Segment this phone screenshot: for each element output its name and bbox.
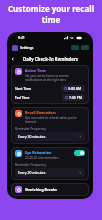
staticText: Settings	[20, 45, 34, 50]
staticText: Reminder Frequency	[15, 127, 47, 131]
button[interactable]: Every 30 minutes	[15, 132, 85, 141]
button[interactable]: App icon	[12, 45, 18, 51]
button[interactable]: Every 20 minutes	[15, 168, 85, 177]
staticText: Set your active hours to receive notific…	[25, 74, 70, 82]
staticText: Eye Relaxation	[25, 150, 52, 155]
staticText: 7:00 PM	[69, 95, 82, 100]
button[interactable]: Toggle Eye Relaxation	[74, 150, 85, 156]
staticText: End Time	[15, 96, 30, 100]
button[interactable]: Start Time	[15, 85, 85, 92]
staticText: Every 30 minutes	[18, 134, 46, 139]
staticText: Active Time	[25, 68, 46, 73]
button[interactable]: Profile	[81, 45, 89, 50]
staticText: Stretching Breaks	[25, 187, 57, 192]
staticText: Daily Check-In Reminders	[23, 56, 78, 62]
staticText: 20-20-20 rule reminders	[25, 156, 59, 160]
staticText: 9:00 AM	[68, 86, 82, 91]
staticText: Reminder Frequency	[15, 163, 47, 167]
button[interactable]: Back	[9, 55, 17, 63]
staticText: Customize your recall time	[5, 3, 97, 25]
staticText: Every 20 minutes	[18, 170, 46, 175]
staticText: 9:41	[18, 35, 25, 40]
staticText: Get reminded to refresh what you've lear…	[25, 116, 77, 124]
staticText: Start Time	[15, 87, 32, 91]
staticText: Recall Reminders	[25, 110, 56, 115]
button[interactable]: End Time	[15, 94, 85, 101]
button[interactable]: Notifications	[71, 45, 79, 50]
